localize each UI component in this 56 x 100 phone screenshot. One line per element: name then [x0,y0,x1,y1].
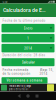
staticText: Calcular [21,60,34,64]
staticText: Fecha de tu último periodo [2,19,45,22]
button[interactable]: Home [23,92,32,100]
button[interactable]: Back [14,92,23,100]
staticText: 12:45 [2,0,7,3]
staticText: Mayo 15, 2014 [39,68,53,75]
staticText: de tu concepción [2,72,30,76]
staticText: Instala ahora y juega [8,84,30,87]
staticText: Calculadora de Embarazo [3,7,48,13]
staticText: Ver semana a semana [6,79,42,82]
staticText: Fecha estimada [2,68,28,72]
staticText: Enero [23,26,32,30]
staticText: Duración del ciclo: 28 días [2,53,45,57]
staticText: 1 [27,36,29,40]
button[interactable]: Recents [32,92,41,100]
button[interactable]: 2014 [0,44,56,52]
staticText: 2014 [24,46,32,50]
button[interactable]: Ver semana a semana [1,77,47,84]
staticText: gratis en tu móvil [8,88,28,91]
button[interactable]: Instala ahora y juega [0,84,56,92]
button[interactable]: Enero [0,24,56,32]
button[interactable]: 1 [0,34,56,42]
button[interactable]: Calcular [0,58,56,66]
